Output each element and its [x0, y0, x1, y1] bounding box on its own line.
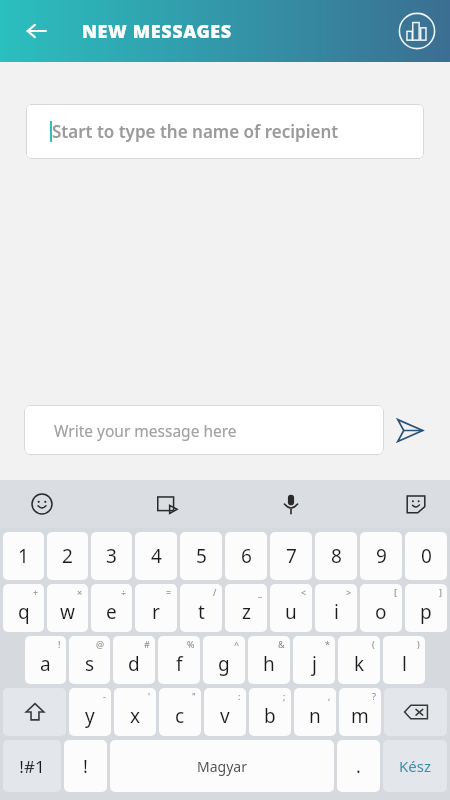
button[interactable]: 2	[47, 532, 88, 580]
staticText: c	[175, 703, 185, 729]
button[interactable]: -	[69, 688, 111, 736]
staticText: e	[106, 599, 117, 625]
button[interactable]: Magyar	[110, 740, 334, 792]
button[interactable]: Kész	[383, 740, 447, 792]
staticText: r	[152, 599, 160, 625]
button[interactable]: Sticker	[395, 483, 437, 525]
button[interactable]: 8	[315, 532, 357, 580]
button[interactable]: Send	[384, 404, 436, 456]
button[interactable]: .	[337, 740, 380, 792]
staticText: !	[58, 638, 61, 650]
staticText: NEW MESSAGES	[82, 19, 232, 44]
button[interactable]: 6	[225, 532, 267, 580]
button[interactable]: 1	[3, 532, 44, 580]
button[interactable]: Backspace	[384, 688, 447, 736]
staticText: m	[351, 703, 369, 729]
button[interactable]: _	[225, 584, 267, 632]
button[interactable]: ×	[47, 584, 88, 632]
staticText: @	[96, 638, 105, 650]
staticText: 5	[196, 543, 207, 569]
staticText: 1	[18, 543, 29, 569]
staticText: 2	[62, 543, 73, 569]
staticText: _	[258, 586, 262, 598]
staticText: %	[187, 638, 195, 650]
staticText: ;	[283, 690, 286, 702]
staticText: "	[192, 690, 196, 702]
button[interactable]: Write your message here	[24, 405, 384, 455]
button[interactable]: &	[248, 636, 290, 684]
staticText: 0	[421, 543, 432, 569]
staticText: f	[176, 651, 183, 677]
staticText: ^	[234, 638, 240, 650]
button[interactable]: 3	[91, 532, 132, 580]
staticText: p	[420, 599, 432, 625]
staticText: *	[325, 638, 330, 650]
staticText: d	[128, 651, 140, 677]
staticText: 7	[286, 543, 297, 569]
button[interactable]: '	[114, 688, 156, 736]
button[interactable]: 7	[270, 532, 312, 580]
button[interactable]: Shift	[3, 688, 66, 736]
button[interactable]: ;	[249, 688, 291, 736]
button[interactable]: *	[293, 636, 335, 684]
button[interactable]: %	[158, 636, 200, 684]
staticText: b	[264, 703, 276, 729]
staticText: j	[312, 651, 317, 677]
button[interactable]: =	[135, 584, 177, 632]
button[interactable]: Start to type the name of recipient	[26, 104, 424, 159]
staticText: &	[278, 638, 285, 650]
button[interactable]: ÷	[91, 584, 132, 632]
button[interactable]: <	[270, 584, 312, 632]
staticText: 9	[376, 543, 387, 569]
staticText: :	[238, 690, 241, 702]
button[interactable]: App logo	[394, 8, 440, 54]
button[interactable]: #	[113, 636, 155, 684]
button[interactable]: ,	[294, 688, 336, 736]
staticText: l	[402, 651, 407, 677]
button[interactable]: ]	[405, 584, 447, 632]
button[interactable]: /	[180, 584, 222, 632]
button[interactable]: (	[338, 636, 380, 684]
staticText: -	[103, 690, 106, 702]
staticText: v	[220, 703, 230, 729]
staticText: ]	[439, 586, 442, 598]
button[interactable]: !	[25, 636, 66, 684]
staticText: o	[375, 599, 387, 625]
button[interactable]: :	[204, 688, 246, 736]
staticText: ×	[77, 586, 83, 598]
staticText: '	[148, 690, 151, 702]
button[interactable]: 0	[405, 532, 447, 580]
button[interactable]: GIF	[146, 483, 188, 525]
button[interactable]: )	[383, 636, 425, 684]
button[interactable]: Back	[14, 9, 58, 53]
button[interactable]: 4	[135, 532, 177, 580]
staticText: n	[309, 703, 321, 729]
staticText: =	[166, 586, 172, 598]
staticText: +	[33, 586, 39, 598]
button[interactable]: Voice input	[270, 483, 312, 525]
button[interactable]: ^	[203, 636, 245, 684]
button[interactable]: Emoji	[21, 483, 63, 525]
staticText: 4	[151, 543, 162, 569]
button[interactable]: "	[159, 688, 201, 736]
staticText: <	[301, 586, 307, 598]
staticText: .	[356, 754, 361, 779]
staticText: !#1	[19, 755, 45, 778]
staticText: t	[198, 599, 205, 625]
button[interactable]: 5	[180, 532, 222, 580]
button[interactable]: ?	[339, 688, 381, 736]
button[interactable]: [	[360, 584, 402, 632]
button[interactable]: @	[69, 636, 110, 684]
button[interactable]: !	[64, 740, 107, 792]
button[interactable]: >	[315, 584, 357, 632]
staticText: a	[40, 651, 51, 677]
staticText: u	[285, 599, 297, 625]
button[interactable]: !#1	[3, 740, 61, 792]
button[interactable]: 9	[360, 532, 402, 580]
staticText: (	[372, 638, 375, 650]
staticText: 8	[331, 543, 342, 569]
button[interactable]: +	[3, 584, 44, 632]
staticText: i	[334, 599, 339, 625]
staticText: !	[83, 754, 88, 779]
staticText: s	[85, 651, 95, 677]
